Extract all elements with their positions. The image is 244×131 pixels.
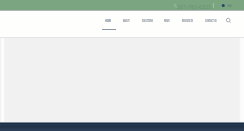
button[interactable]: HOME: [103, 15, 114, 26]
staticText: NEWS: [164, 18, 170, 23]
button[interactable]: RESOURCES: [180, 15, 195, 26]
staticText: SOLUTIONS: [142, 18, 153, 23]
button[interactable]: 281-782-6325: [177, 3, 210, 10]
button[interactable]: CONTACT US: [203, 15, 218, 26]
staticText: HOME: [105, 18, 111, 23]
staticText: ABOUT: [123, 18, 130, 23]
staticText: CONTACT US: [205, 18, 217, 23]
staticText: 281-782-6325: [177, 3, 212, 10]
button[interactable]: Search: [225, 17, 232, 24]
button[interactable]: Facebook: [221, 3, 226, 8]
button[interactable]: ABOUT: [121, 15, 133, 26]
button[interactable]: LinkedIn: [227, 3, 232, 8]
button[interactable]: SOLUTIONS: [140, 15, 155, 26]
button[interactable]: Call: [173, 3, 178, 8]
staticText: RESOURCES: [182, 18, 193, 23]
button[interactable]: NEWS: [162, 15, 173, 26]
